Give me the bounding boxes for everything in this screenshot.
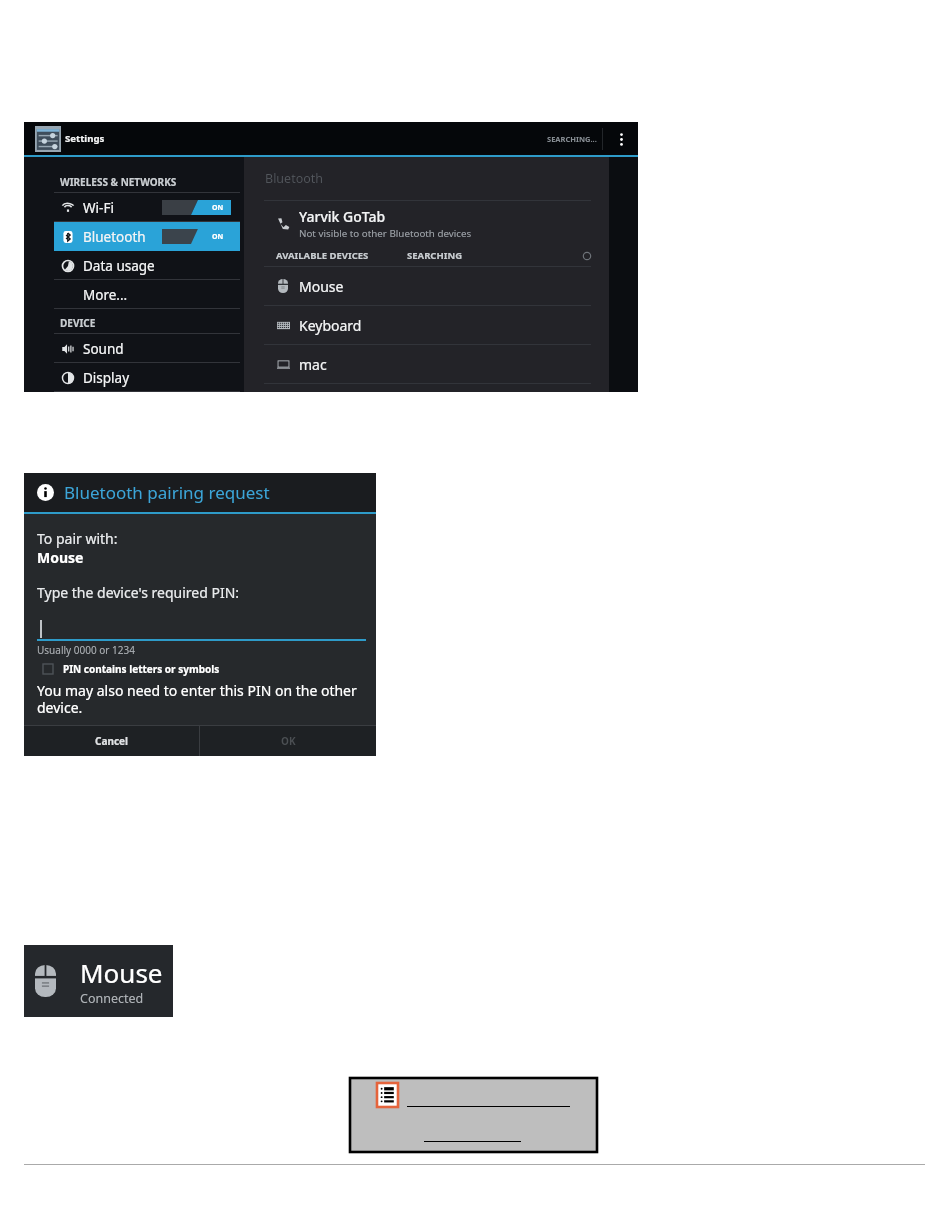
staticText: Bluetooth	[265, 170, 324, 187]
button[interactable]: More...	[54, 280, 240, 309]
staticText: Settings	[65, 132, 105, 145]
staticText: SEARCHING	[407, 249, 463, 262]
staticText: ON	[212, 232, 224, 242]
staticText: AVAILABLE DEVICES	[276, 249, 369, 262]
staticText: Type the device's required PIN:	[37, 583, 240, 602]
staticText: Keyboard	[299, 316, 362, 335]
staticText: Data usage	[83, 257, 155, 275]
staticText: Cancel	[95, 734, 129, 748]
staticText: Connected	[80, 990, 144, 1007]
staticText: Mouse	[37, 548, 84, 567]
button[interactable]: Mouse	[24, 945, 173, 1017]
button[interactable]: Wi-Fi	[54, 193, 240, 222]
button[interactable]: Data usage	[54, 251, 240, 280]
button[interactable]: mac	[244, 345, 609, 383]
button[interactable]: Keyboard	[244, 306, 609, 344]
staticText: Sound	[83, 340, 124, 358]
staticText: You may also need to enter this PIN on t…	[37, 681, 366, 717]
staticText: ON	[212, 203, 224, 213]
staticText: Wi-Fi	[83, 199, 114, 217]
button[interactable]: Display	[54, 363, 240, 392]
button[interactable]: Mouse	[244, 267, 609, 305]
button[interactable]: Cancel	[24, 726, 199, 756]
staticText: WIRELESS & NETWORKS	[60, 175, 177, 189]
staticText: Bluetooth	[83, 228, 146, 246]
other: Settings app icon	[35, 126, 61, 152]
button[interactable]: OK	[200, 726, 376, 756]
staticText: OK	[281, 734, 296, 748]
staticText: Yarvik GoTab	[299, 207, 386, 226]
staticText: Display	[83, 369, 130, 387]
staticText: Not visible to other Bluetooth devices	[299, 227, 472, 240]
staticText: Usually 0000 or 1234	[37, 643, 135, 657]
button[interactable]: PIN contains letters or symbols	[37, 662, 220, 676]
staticText: More...	[83, 286, 128, 304]
staticText: Mouse	[80, 955, 163, 990]
button[interactable]: Settings app icon	[35, 122, 105, 155]
button[interactable]: Sound	[54, 334, 240, 363]
staticText: Mouse	[299, 277, 344, 296]
staticText: PIN contains letters or symbols	[63, 662, 220, 676]
button[interactable]: Bluetooth	[54, 222, 240, 251]
staticText: To pair with:	[37, 529, 118, 548]
button[interactable]: Yarvik GoTab	[244, 201, 609, 245]
staticText: DEVICE	[60, 316, 96, 330]
staticText: Bluetooth pairing request	[64, 481, 270, 504]
button[interactable]: More options	[615, 128, 627, 150]
staticText: SEARCHING...	[547, 134, 597, 144]
staticText: mac	[299, 355, 327, 374]
